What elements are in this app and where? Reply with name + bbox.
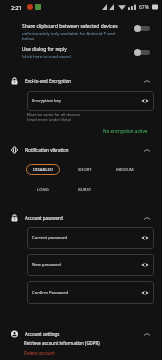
button[interactable]: Confirm Password: [27, 281, 154, 304]
button[interactable]: Delete account: [0, 349, 162, 360]
staticText: Must be same for all devices: [27, 112, 81, 117]
staticText: Account password: [25, 215, 63, 221]
button[interactable]: Show password: [141, 290, 149, 296]
button[interactable]: Current password: [27, 227, 154, 249]
button[interactable]: BURST: [68, 184, 102, 195]
staticText: BURST: [78, 187, 92, 193]
staticText: End-to-end Encryption: [25, 78, 72, 84]
button[interactable]: Show password: [141, 262, 149, 268]
button[interactable]: SHORT: [68, 164, 102, 175]
staticText: Share clipboard between selected devices: [22, 23, 118, 30]
button[interactable]: DISABLED: [26, 164, 60, 175]
button[interactable]: Encryption key: [27, 91, 154, 111]
button[interactable]: Show password: [141, 98, 149, 104]
staticText: LONG: [37, 187, 49, 193]
button[interactable]: Account password: [0, 211, 162, 225]
button[interactable]: Toggle: [133, 22, 153, 34]
staticText: New password: [32, 262, 61, 268]
staticText: Retrieve account information (GDPR): [24, 340, 100, 346]
staticText: No encryption active: [103, 128, 148, 134]
button[interactable]: Account settings: [0, 327, 162, 341]
staticText: Delete account: [24, 350, 55, 356]
button[interactable]: MEDIUM: [108, 164, 142, 175]
button[interactable]: Show password: [141, 235, 149, 241]
staticText: Notification vibration: [25, 147, 69, 153]
button[interactable]: Toggle: [133, 46, 153, 58]
button[interactable]: Notification vibration: [0, 143, 162, 157]
button[interactable]: Retrieve account information (GDPR): [0, 339, 162, 349]
staticText: Use dialog for reply: [22, 46, 67, 53]
staticText: SHORT: [78, 167, 92, 173]
button[interactable]: New password: [27, 254, 154, 276]
staticText: DISABLED: [33, 167, 53, 173]
staticText: unfortunately only available for Android…: [22, 30, 116, 41]
staticText: 67%: [139, 4, 149, 11]
button[interactable]: Share clipboard between selected devices: [0, 17, 162, 41]
staticText: 2:21: [11, 4, 22, 11]
staticText: (read more under Help): [27, 117, 72, 122]
button[interactable]: LONG: [26, 184, 60, 195]
staticText: Current password: [32, 235, 68, 241]
staticText: MEDIUM: [116, 167, 134, 173]
staticText: (click here to read more): [22, 53, 71, 59]
button[interactable]: End-to-end Encryption: [0, 74, 162, 88]
button[interactable]: Use dialog for reply: [0, 42, 162, 61]
staticText: Confirm Password: [32, 290, 68, 296]
staticText: Account settings: [25, 331, 60, 337]
staticText: Encryption key: [32, 98, 61, 104]
